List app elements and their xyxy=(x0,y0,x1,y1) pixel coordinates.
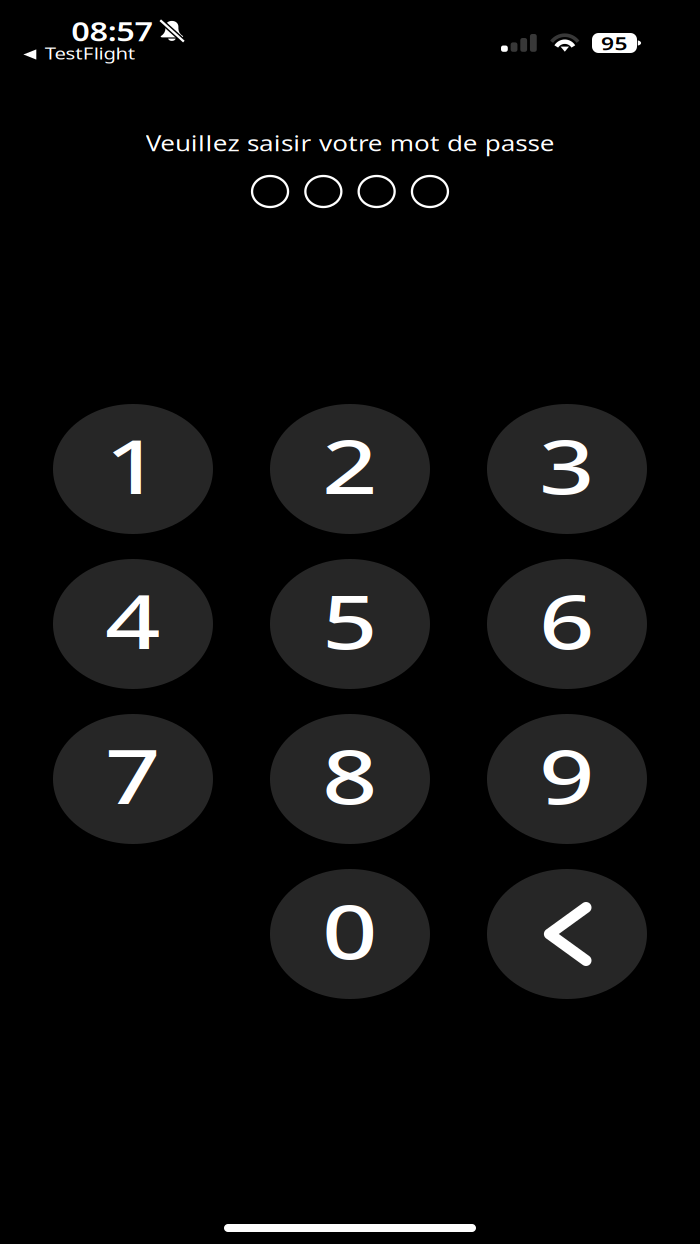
staticText: 6 xyxy=(545,569,588,671)
staticText: Veuillez saisir votre mot de passe xyxy=(182,128,517,158)
button[interactable]: 5 xyxy=(270,559,430,689)
button[interactable]: Delete xyxy=(487,869,647,999)
staticText: 5 xyxy=(328,569,371,671)
staticText: 9 xyxy=(545,724,588,826)
button[interactable]: 3 xyxy=(487,404,647,534)
staticText: TestFlight xyxy=(53,42,127,64)
staticText: 8 xyxy=(328,724,371,826)
button[interactable]: 4 xyxy=(53,559,213,689)
staticText: 08:57 xyxy=(78,13,145,49)
staticText: 7 xyxy=(111,724,154,826)
staticText: 0 xyxy=(328,879,371,981)
staticText: 4 xyxy=(111,569,154,671)
staticText: 1 xyxy=(111,414,154,516)
button[interactable]: 2 xyxy=(270,404,430,534)
staticText: 3 xyxy=(545,414,588,516)
button[interactable]: 9 xyxy=(487,714,647,844)
button[interactable]: 1 xyxy=(53,404,213,534)
button[interactable]: 7 xyxy=(53,714,213,844)
button[interactable]: 6 xyxy=(487,559,647,689)
button[interactable]: 0 xyxy=(270,869,430,999)
staticText: 2 xyxy=(328,414,371,516)
button[interactable]: 8 xyxy=(270,714,430,844)
staticText: 95 xyxy=(603,30,625,56)
